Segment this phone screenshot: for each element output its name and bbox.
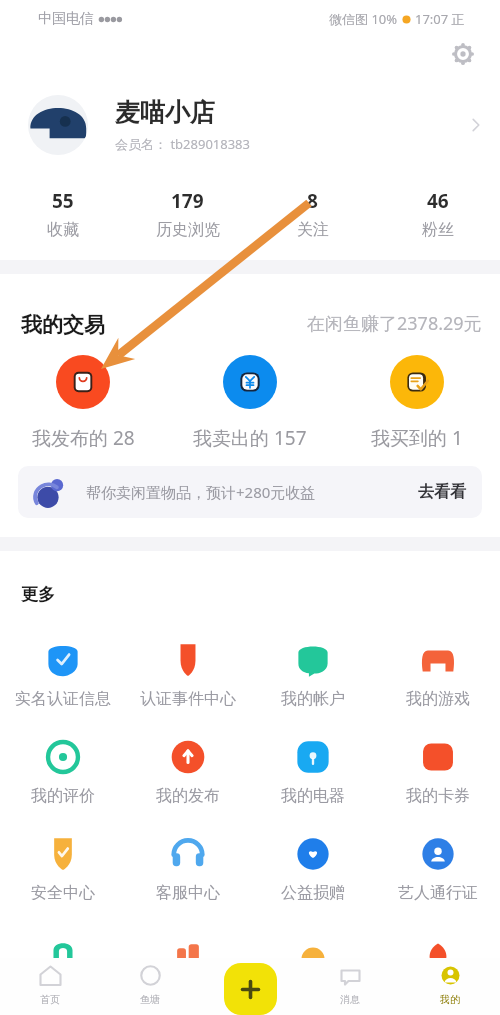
staticText: 微信图 10% [329,10,398,28]
staticText: 鱼塘 [140,993,160,1006]
staticText: 粉丝 [422,220,454,240]
button[interactable] [125,934,250,1002]
staticText: 我的游戏 [406,689,470,709]
staticText: 麦喵小店 [115,97,215,128]
button[interactable]: 实名认证信息 [0,643,125,709]
button[interactable]: Settings [450,41,476,67]
staticText: 在闲鱼赚了2378.29元 [307,311,482,336]
button[interactable]: 46 [375,188,500,240]
button[interactable]: 我的发布 [125,740,250,806]
staticText: 我的电器 [281,786,345,806]
staticText: 去看看 [418,482,466,502]
staticText: 我的卡券 [406,786,470,806]
button[interactable]: 艺人通行证 [375,837,500,903]
staticText: 17:07 正 [415,10,465,28]
button[interactable]: 认证事件中心 [125,643,250,709]
button[interactable]: Publish [224,963,277,1015]
button[interactable]: 我的卡券 [375,740,500,806]
button[interactable]: 179 [125,188,250,240]
staticText: 我发布的 28 [32,425,135,451]
staticText: 关注 [297,220,329,240]
staticText: 我的帐户 [281,689,345,709]
staticText: 我买到的 1 [371,425,463,451]
button[interactable] [375,934,500,1002]
staticText: 我的发布 [156,786,220,806]
button[interactable]: 客服中心 [125,837,250,903]
button[interactable]: 我的电器 [250,740,375,806]
staticText: 8 [307,188,318,214]
button[interactable]: 我的 [400,963,500,1006]
staticText: 帮你卖闲置物品，预计+280元收益 [86,482,316,502]
staticText: 我的交易 [21,312,105,338]
button[interactable]: 8 [250,188,375,240]
button[interactable]: 帮你卖闲置物品，预计+280元收益 [18,466,482,518]
staticText: 安全中心 [31,883,95,903]
staticText: 179 [171,188,204,214]
button[interactable]: 安全中心 [0,837,125,903]
staticText: 我卖出的 157 [193,425,307,451]
button[interactable]: 我卖出的 157 [166,355,333,451]
button[interactable] [250,934,375,1002]
button[interactable]: 我的评价 [0,740,125,806]
staticText: 会员名： tb289018383 [115,135,250,153]
button[interactable]: 鱼塘 [100,963,200,1006]
button[interactable]: 我的帐户 [250,643,375,709]
button[interactable]: 首页 [0,963,100,1006]
staticText: 我的评价 [31,786,95,806]
staticText: 艺人通行证 [398,883,478,903]
button[interactable]: 消息 [300,963,400,1006]
staticText: 实名认证信息 [15,689,111,709]
staticText: 收藏 [47,220,79,240]
staticText: 公益损赠 [281,883,345,903]
staticText: 55 [52,188,74,214]
staticText: 消息 [340,993,360,1006]
button[interactable]: 55 [0,188,125,240]
button[interactable] [0,934,125,1002]
staticText: 认证事件中心 [140,689,236,709]
staticText: 历史浏览 [156,220,220,240]
button[interactable]: 我买到的 1 [333,355,500,451]
button[interactable]: 我发布的 28 [0,355,166,451]
staticText: 客服中心 [156,883,220,903]
button[interactable]: 我的游戏 [375,643,500,709]
button[interactable]: 公益损赠 [250,837,375,903]
staticText: 首页 [40,993,60,1006]
staticText: 我的 [440,993,460,1006]
staticText: 46 [427,188,449,214]
staticText: 更多 [21,584,55,605]
staticText: 中国电信 [38,10,94,28]
